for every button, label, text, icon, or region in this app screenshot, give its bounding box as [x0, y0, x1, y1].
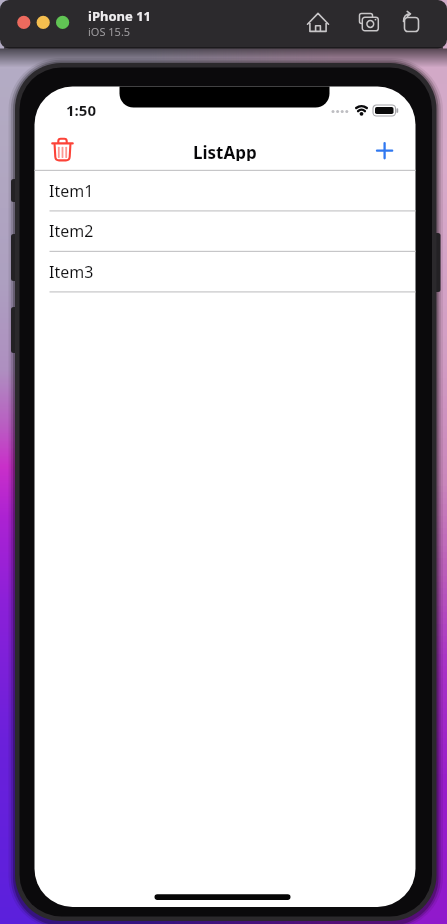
button[interactable] [47, 133, 78, 170]
staticText: Item1 [49, 180, 94, 202]
button[interactable]: Item2 [34, 211, 415, 251]
button[interactable] [395, 6, 427, 40]
staticText: iPhone 11 [88, 7, 151, 25]
button[interactable]: Item1 [34, 171, 415, 211]
button[interactable] [56, 15, 70, 29]
button[interactable] [369, 135, 400, 166]
staticText: Item2 [49, 220, 94, 242]
staticText: Item3 [49, 261, 94, 283]
staticText: 1:50 [66, 100, 96, 117]
button[interactable] [17, 15, 31, 29]
staticText: iOS 15.5 [88, 24, 131, 39]
staticText: ListApp [193, 141, 257, 161]
button[interactable] [36, 15, 50, 29]
button[interactable] [353, 6, 385, 40]
button[interactable] [302, 6, 334, 40]
button[interactable]: Item3 [34, 252, 415, 292]
